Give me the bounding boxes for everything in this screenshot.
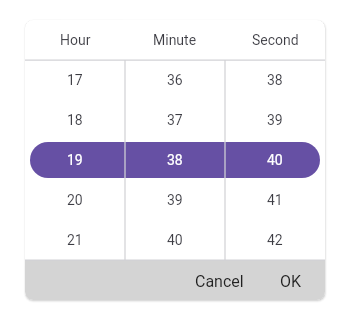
staticText: 40: [267, 152, 283, 168]
button[interactable]: 40: [125, 220, 225, 260]
button[interactable]: 42: [225, 220, 325, 260]
staticText: 20: [67, 192, 83, 208]
staticText: OK: [280, 272, 302, 291]
staticText: Hour: [60, 32, 91, 48]
button[interactable]: OK: [268, 261, 314, 300]
staticText: Cancel: [195, 272, 244, 291]
staticText: 40: [167, 232, 183, 248]
staticText: 39: [267, 112, 283, 128]
button[interactable]: 36: [125, 60, 225, 100]
staticText: 42: [267, 232, 283, 248]
button[interactable]: 17: [25, 60, 125, 100]
staticText: 41: [267, 192, 283, 208]
button[interactable]: 21: [25, 220, 125, 260]
button[interactable]: 20: [25, 180, 125, 220]
button[interactable]: Hour: [25, 20, 125, 60]
staticText: 21: [67, 232, 83, 248]
button[interactable]: 19: [25, 140, 125, 180]
button[interactable]: 38: [125, 140, 225, 180]
staticText: 37: [167, 112, 183, 128]
button[interactable]: 39: [225, 100, 325, 140]
button[interactable]: Cancel: [183, 261, 256, 300]
staticText: 38: [167, 152, 183, 168]
button[interactable]: 41: [225, 180, 325, 220]
staticText: 39: [167, 192, 183, 208]
button[interactable]: 18: [25, 100, 125, 140]
button[interactable]: 39: [125, 180, 225, 220]
staticText: 18: [67, 112, 83, 128]
staticText: 17: [67, 72, 83, 88]
staticText: Minute: [153, 32, 197, 48]
staticText: 19: [67, 152, 83, 168]
button[interactable]: 40: [225, 140, 325, 180]
staticText: 38: [267, 72, 283, 88]
staticText: 36: [167, 72, 183, 88]
button[interactable]: 38: [225, 60, 325, 100]
staticText: Second: [252, 32, 299, 48]
button[interactable]: Minute: [125, 20, 225, 60]
button[interactable]: Second: [225, 20, 325, 60]
button[interactable]: 37: [125, 100, 225, 140]
